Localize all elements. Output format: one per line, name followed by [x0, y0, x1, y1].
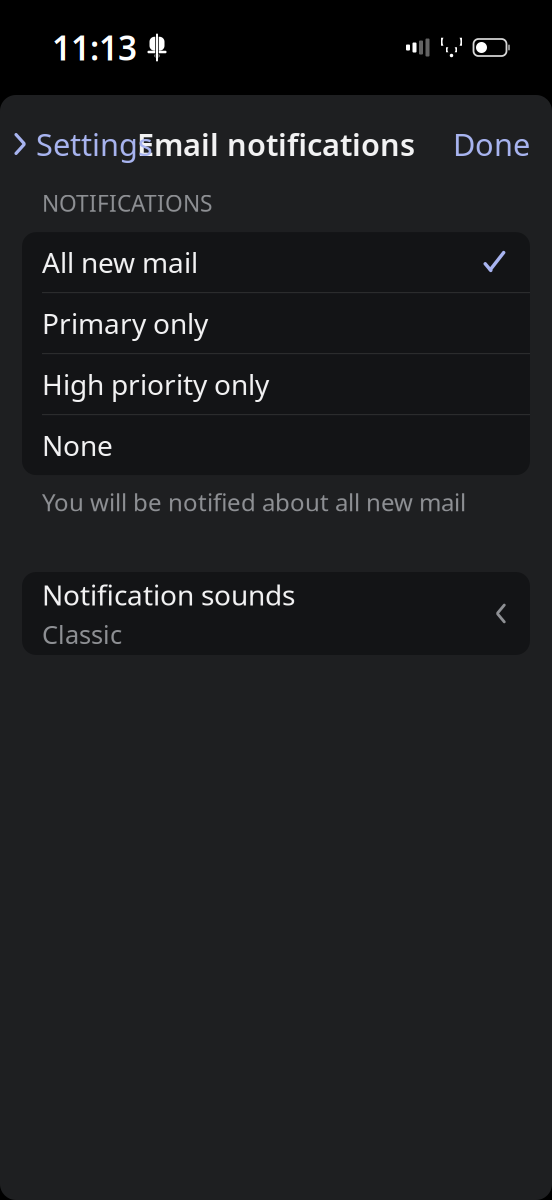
staticText: Email notifications: [137, 124, 415, 164]
staticText: Notification sounds: [42, 576, 295, 613]
button[interactable]: Primary only: [22, 293, 530, 354]
staticText: You will be notified about all new mail: [42, 486, 466, 518]
staticText: All new mail: [42, 243, 198, 281]
button[interactable]: Settings: [0, 114, 163, 174]
button[interactable]: All new mail: [22, 232, 530, 293]
staticText: NOTIFICATIONS: [42, 188, 212, 218]
staticText: None: [42, 426, 113, 464]
staticText: Classic: [42, 617, 122, 651]
button[interactable]: None: [22, 415, 530, 475]
staticText: Primary only: [42, 304, 208, 342]
staticText: 11:13: [52, 25, 137, 70]
staticText: Settings: [36, 124, 153, 164]
button[interactable]: Done: [443, 114, 552, 174]
staticText: Done: [453, 124, 530, 164]
staticText: High priority only: [42, 365, 269, 403]
button[interactable]: High priority only: [22, 354, 530, 415]
button[interactable]: Notification sounds: [22, 572, 530, 655]
